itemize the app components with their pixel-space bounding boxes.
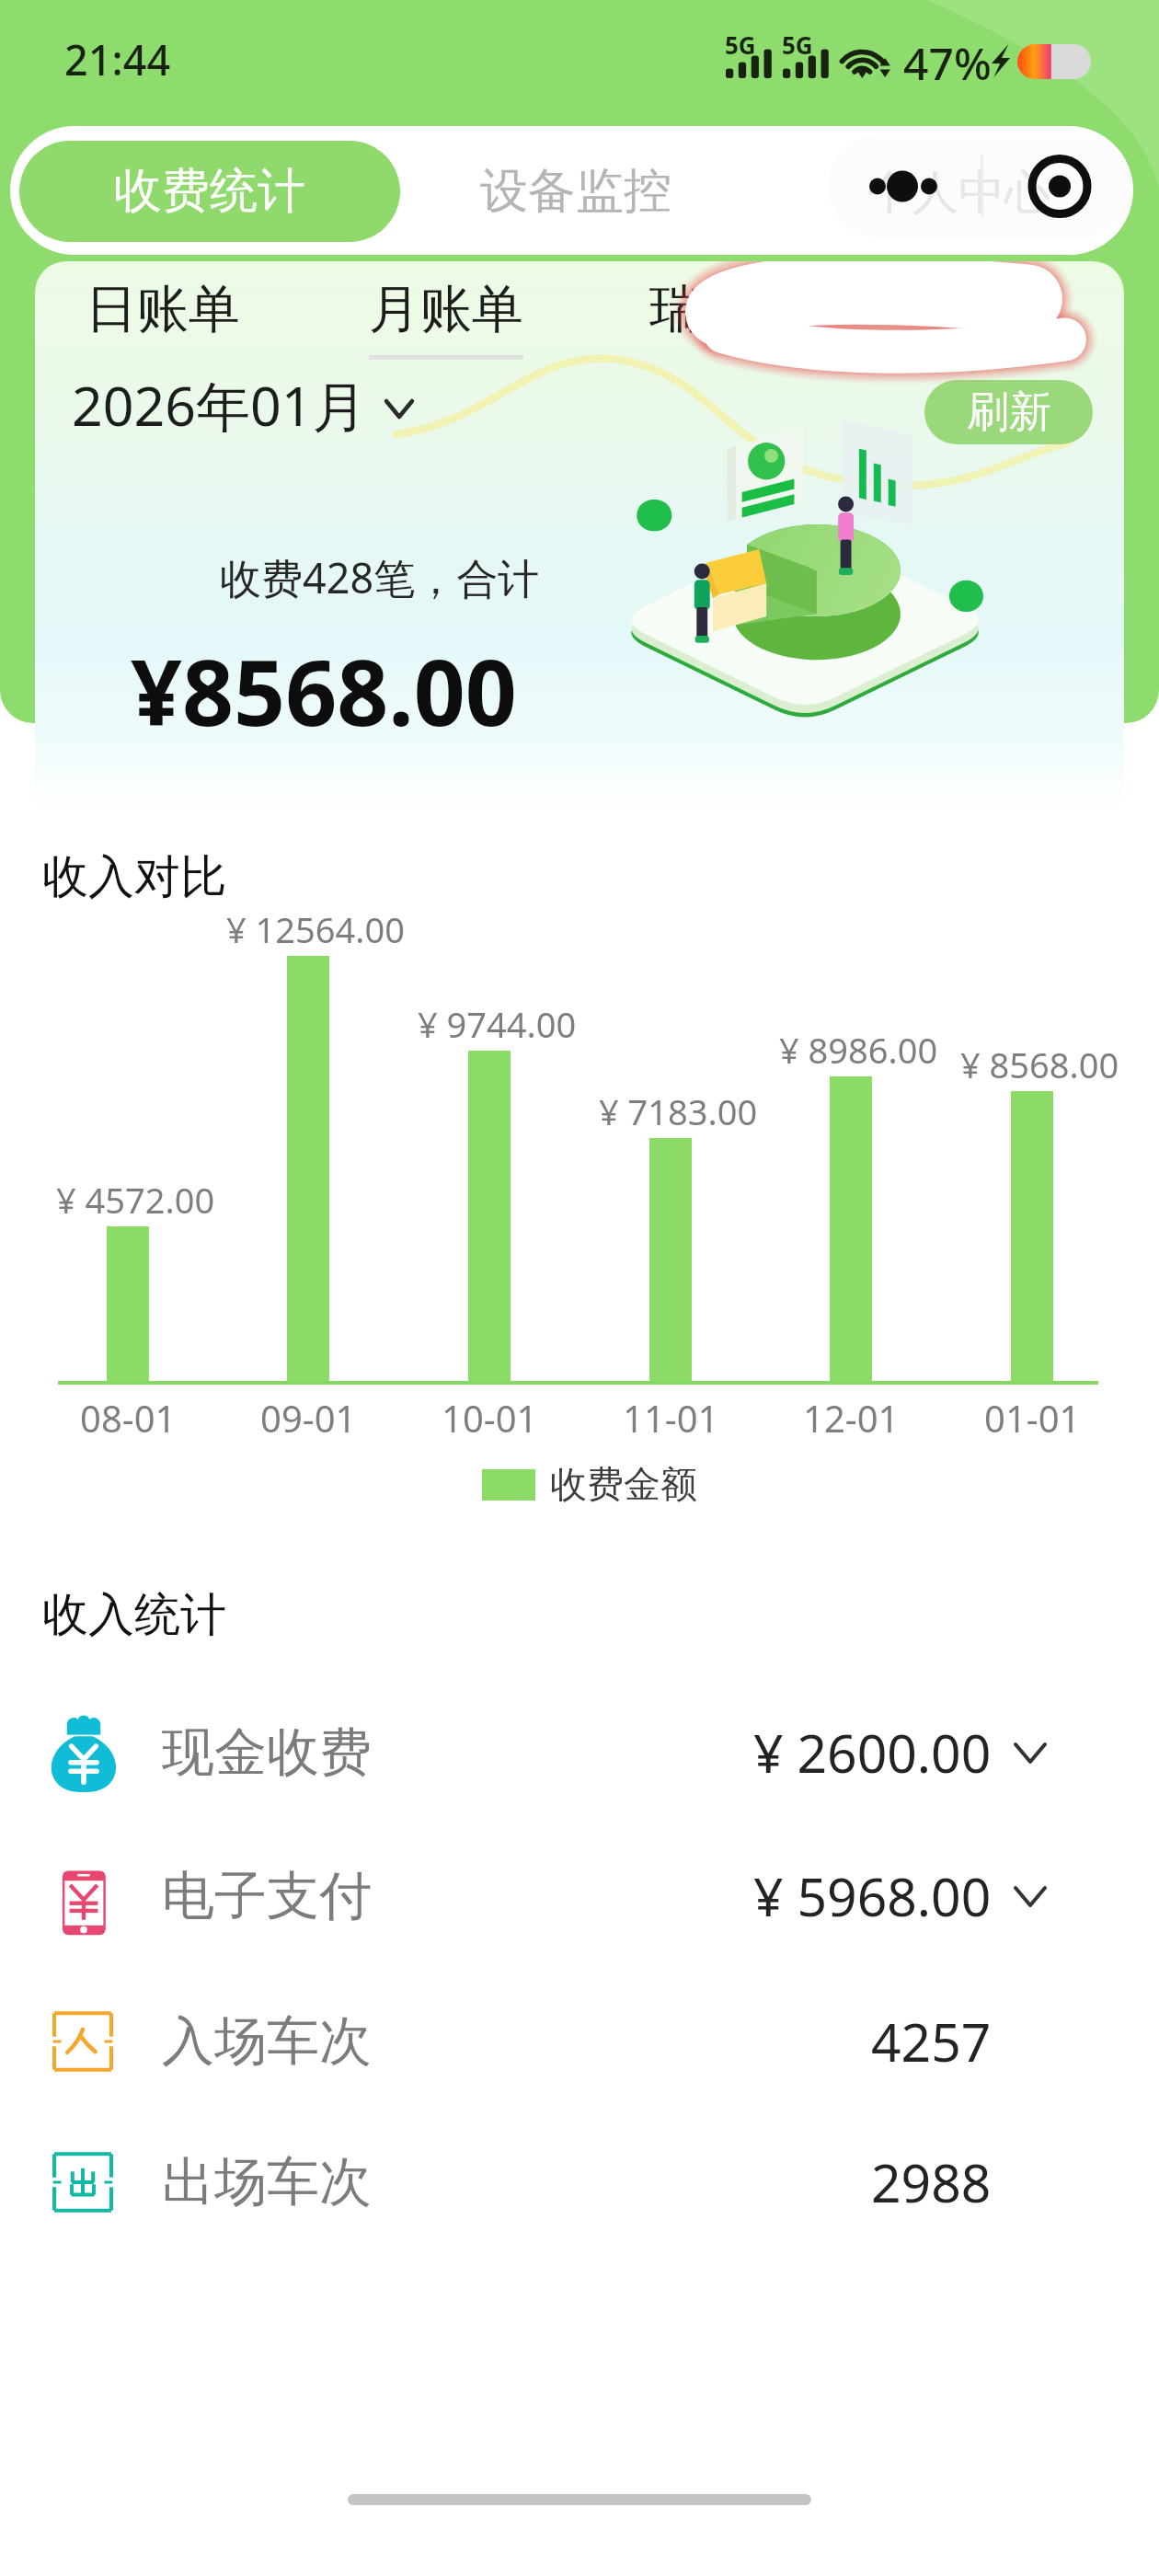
staticText: 个人中心 (866, 164, 1050, 222)
button[interactable]: 月账单 (369, 277, 523, 360)
button[interactable]: 现金收费 (0, 1681, 1159, 1824)
staticText: ¥ 8568.00 (960, 1041, 1119, 1088)
staticText: 收入统计 (42, 1586, 226, 1644)
button[interactable]: 刷新 (924, 380, 1093, 444)
staticText: 11-01 (623, 1393, 719, 1443)
button[interactable]: 日账单 (86, 277, 240, 342)
staticText: ¥ 4572.00 (56, 1176, 215, 1224)
staticText: 出场车次 (162, 2149, 372, 2215)
staticText: 4257 (871, 2006, 992, 2077)
staticText: 01-01 (984, 1393, 1081, 1443)
staticText: 5G (782, 29, 813, 61)
staticText: 收入对比 (42, 848, 226, 906)
staticText: ¥ 5968.00 (753, 1860, 992, 1932)
staticText: 2988 (871, 2146, 992, 2218)
staticText: 入场车次 (162, 2008, 372, 2075)
button[interactable]: 入场车次 (0, 1970, 1159, 2113)
staticText: ¥ 2600.00 (753, 1717, 992, 1788)
staticText: 瑞 (649, 277, 701, 342)
staticText: 收费金额 (550, 1461, 697, 1507)
staticText: 09-01 (260, 1393, 357, 1443)
staticText: 现金收费 (162, 1719, 372, 1786)
staticText: ¥ 12564.00 (226, 905, 405, 953)
staticText: ¥ 9744.00 (418, 1000, 577, 1048)
staticText: 21:44 (64, 31, 171, 87)
staticText: 10-01 (442, 1393, 538, 1443)
button[interactable]: 收费统计 (19, 141, 400, 242)
staticText: 设备监控 (480, 161, 671, 222)
staticText: ¥ 7183.00 (599, 1087, 758, 1135)
staticText: 47% (903, 33, 992, 93)
staticText: ¥8568.00 (131, 629, 517, 752)
staticText: ¥ 8986.00 (779, 1026, 938, 1074)
button[interactable]: 出场车次 (0, 2110, 1159, 2254)
staticText: 08-01 (80, 1393, 177, 1443)
staticText: 刷新 (967, 385, 1051, 439)
button[interactable]: 2026年01月 (72, 368, 367, 443)
staticText: 收费428笔，合计 (220, 549, 540, 605)
staticText: 5G (725, 29, 756, 61)
staticText: 月账单 (369, 277, 523, 342)
staticText: 收费统计 (114, 161, 305, 222)
staticText: 电子支付 (162, 1863, 372, 1929)
staticText: 12-01 (803, 1393, 900, 1443)
button[interactable]: 电子支付 (0, 1824, 1159, 1968)
button[interactable]: More options (828, 134, 1131, 238)
button[interactable]: 设备监控 (461, 141, 691, 242)
